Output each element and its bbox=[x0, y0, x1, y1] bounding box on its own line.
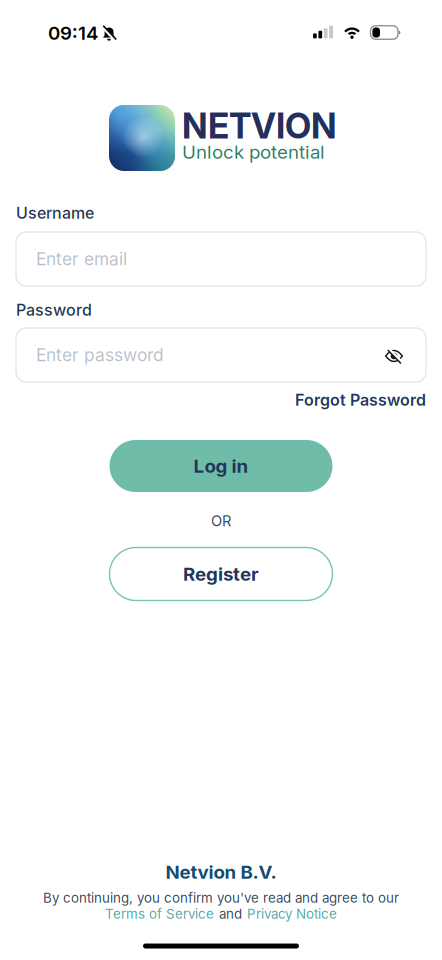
staticText: Enter password bbox=[36, 345, 164, 365]
button[interactable]: Privacy Notice bbox=[247, 906, 337, 922]
staticText: and bbox=[219, 906, 242, 922]
staticText: Netvion B.V. bbox=[165, 861, 276, 883]
staticText: OR bbox=[211, 512, 231, 530]
staticText: Password bbox=[16, 301, 92, 319]
staticText: Unlock potential bbox=[182, 141, 325, 163]
staticText: Forgot Password bbox=[295, 391, 426, 409]
button[interactable]: Log in bbox=[109, 440, 332, 492]
button[interactable]: Terms of Service bbox=[105, 906, 214, 922]
staticText: Terms of Service bbox=[105, 906, 214, 922]
button[interactable]: Forgot Password bbox=[295, 391, 426, 409]
button[interactable]: Register bbox=[109, 547, 332, 600]
staticText: 09:14 bbox=[48, 22, 98, 44]
staticText: Username bbox=[16, 204, 94, 222]
staticText: Enter email bbox=[36, 249, 127, 269]
button[interactable]: Show password bbox=[385, 347, 403, 364]
staticText: Log in bbox=[193, 455, 248, 477]
staticText: NETVION bbox=[182, 106, 337, 146]
staticText: Privacy Notice bbox=[247, 906, 337, 922]
staticText: By continuing, you confirm you've read a… bbox=[43, 890, 399, 906]
staticText: Register bbox=[183, 563, 259, 585]
